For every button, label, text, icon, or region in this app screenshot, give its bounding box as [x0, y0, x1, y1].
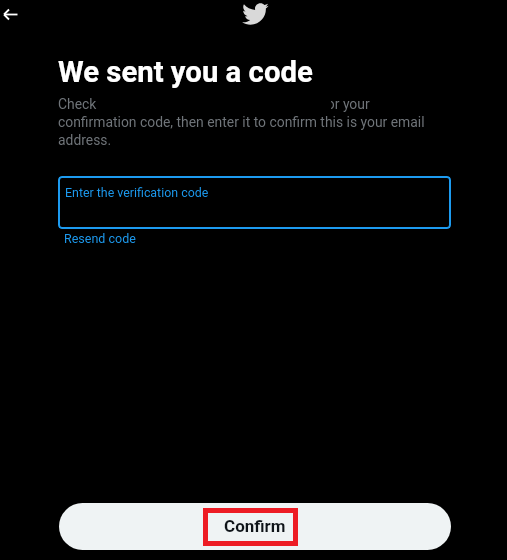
staticText: Enter the verification code — [65, 185, 209, 200]
button[interactable]: Confirm — [59, 503, 451, 550]
button[interactable]: Back — [0, 0, 29, 28]
button[interactable]: Resend code — [59, 229, 141, 248]
button[interactable]: Enter the verification code — [58, 176, 451, 229]
staticText: Check — [58, 96, 97, 112]
staticText: We sent you a code — [58, 55, 313, 89]
staticText: address. — [58, 132, 112, 148]
staticText: confirmation code, then enter it to conf… — [58, 114, 425, 130]
staticText: Confirm — [224, 516, 286, 536]
staticText: for your — [322, 96, 370, 112]
staticText: Resend code — [64, 231, 136, 246]
